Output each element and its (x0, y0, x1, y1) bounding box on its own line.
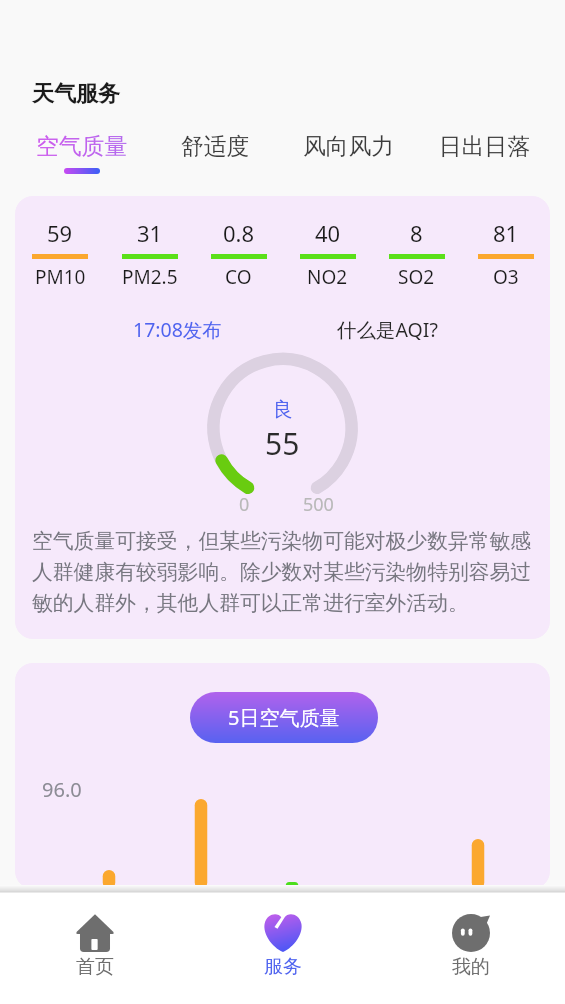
button[interactable]: 空气质量 (30, 132, 134, 174)
staticText: 40 (315, 218, 341, 248)
button[interactable]: 舒适度 (175, 132, 256, 161)
staticText: 空气质量 (36, 132, 128, 161)
staticText: 首页 (76, 955, 114, 979)
button[interactable]: 17:08发布 (129, 312, 226, 347)
button[interactable]: 风向风力 (297, 132, 401, 161)
button[interactable]: 服务 (189, 893, 377, 979)
staticText: 我的 (452, 955, 490, 979)
staticText: 81 (493, 218, 519, 248)
staticText: 59 (47, 218, 73, 248)
button[interactable]: 我的 (377, 893, 565, 979)
staticText: PM2.5 (122, 264, 178, 290)
staticText: 500 (303, 492, 334, 517)
staticText: 0.8 (223, 218, 255, 248)
staticText: 8 (410, 218, 423, 248)
button[interactable]: 5日空气质量 (190, 692, 378, 743)
staticText: 55 (265, 423, 300, 464)
staticText: NO2 (307, 264, 348, 290)
staticText: 风向风力 (303, 132, 395, 161)
button[interactable]: 日出日落 (433, 132, 537, 161)
staticText: 17:08发布 (133, 316, 222, 343)
staticText: 0 (239, 492, 250, 517)
button[interactable]: 什么是AQI? (333, 312, 442, 347)
staticText: 5日空气质量 (228, 704, 340, 731)
staticText: 日出日落 (439, 132, 531, 161)
staticText: PM10 (35, 264, 86, 290)
staticText: 舒适度 (181, 132, 250, 161)
button[interactable]: 首页 (0, 893, 189, 979)
staticText: 天气服务 (32, 80, 120, 108)
staticText: 空气质量可接受，但某些污染物可能对极少数异常敏感人群健康有较弱影响。除少数对某些… (32, 528, 544, 616)
staticText: 96.0 (42, 776, 82, 803)
staticText: O3 (493, 264, 519, 290)
staticText: 31 (137, 218, 163, 248)
staticText: 什么是AQI? (337, 316, 438, 343)
staticText: SO2 (398, 264, 435, 290)
staticText: CO (225, 264, 252, 290)
staticText: 良 (273, 397, 293, 422)
staticText: 服务 (264, 955, 302, 979)
